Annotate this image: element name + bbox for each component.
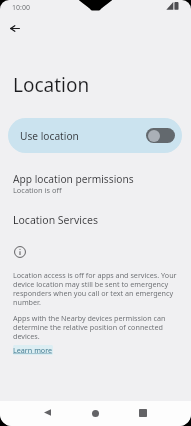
staticText: Location	[13, 72, 90, 98]
button[interactable]: Recent apps	[132, 402, 154, 424]
button[interactable]: Navigate up	[3, 16, 27, 40]
button[interactable]	[0, 164, 191, 198]
button[interactable]: Learn more	[13, 345, 53, 355]
button[interactable]: Home	[84, 402, 106, 424]
button[interactable]	[0, 206, 191, 232]
button[interactable]: Back	[36, 401, 58, 423]
staticText: Location is off	[13, 185, 62, 195]
staticText: Location access is off for apps and serv…	[13, 270, 179, 307]
staticText: Location Services	[13, 213, 98, 227]
staticText: App location permissions	[13, 172, 134, 186]
button[interactable]: Use location	[8, 118, 182, 153]
staticText: 10:00	[12, 3, 30, 13]
staticText: Use location	[20, 129, 79, 143]
staticText: Apps with the Nearby devices permission …	[13, 313, 179, 341]
staticText: Learn more	[13, 345, 53, 355]
